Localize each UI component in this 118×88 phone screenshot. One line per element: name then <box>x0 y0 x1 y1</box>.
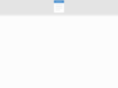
button[interactable]: Document preview <box>0 0 118 88</box>
